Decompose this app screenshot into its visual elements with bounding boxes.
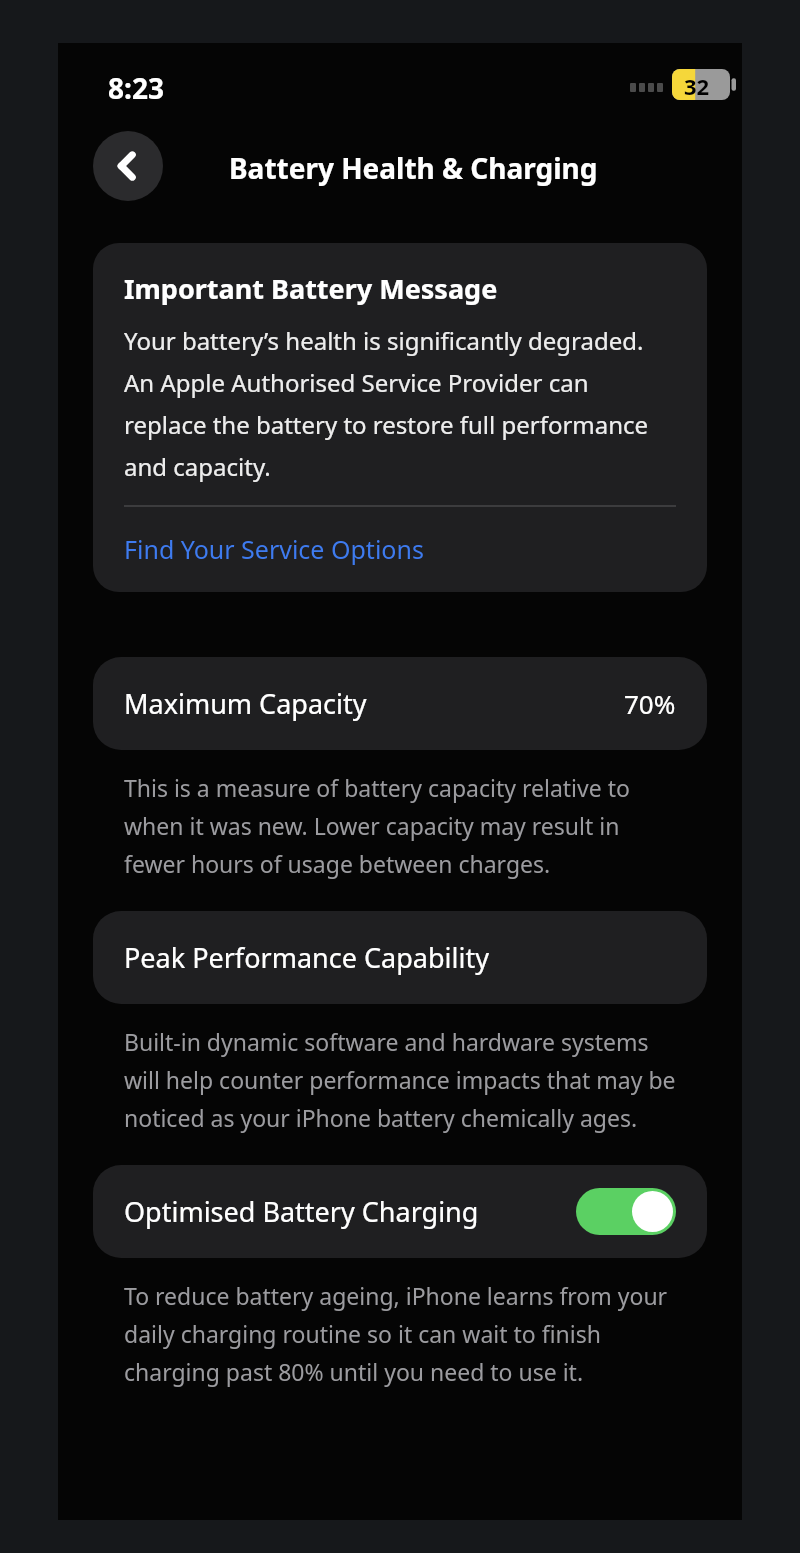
staticText: Important Battery Message: [124, 270, 498, 307]
staticText: This is a measure of battery capacity re…: [124, 772, 686, 880]
staticText: Your battery’s health is significantly d…: [124, 324, 676, 483]
button[interactable]: Maximum Capacity: [93, 657, 707, 750]
button[interactable]: Optimised Battery Charging, on: [576, 1188, 676, 1235]
staticText: 8:23: [108, 69, 164, 107]
button[interactable]: Find Your Service Options: [124, 532, 424, 566]
staticText: Peak Performance Capability: [124, 939, 489, 976]
staticText: Battery Health & Charging: [229, 149, 598, 187]
staticText: Optimised Battery Charging: [124, 1193, 479, 1230]
button[interactable]: Back: [93, 131, 163, 201]
staticText: To reduce battery ageing, iPhone learns …: [124, 1280, 686, 1388]
staticText: 32: [684, 71, 710, 101]
staticText: Find Your Service Options: [124, 532, 424, 566]
button[interactable]: Peak Performance Capability: [93, 911, 707, 1004]
button[interactable]: Optimised Battery Charging: [93, 1165, 707, 1258]
staticText: Built-in dynamic software and hardware s…: [124, 1026, 686, 1134]
staticText: Maximum Capacity: [124, 685, 367, 722]
staticText: 70%: [624, 686, 676, 721]
